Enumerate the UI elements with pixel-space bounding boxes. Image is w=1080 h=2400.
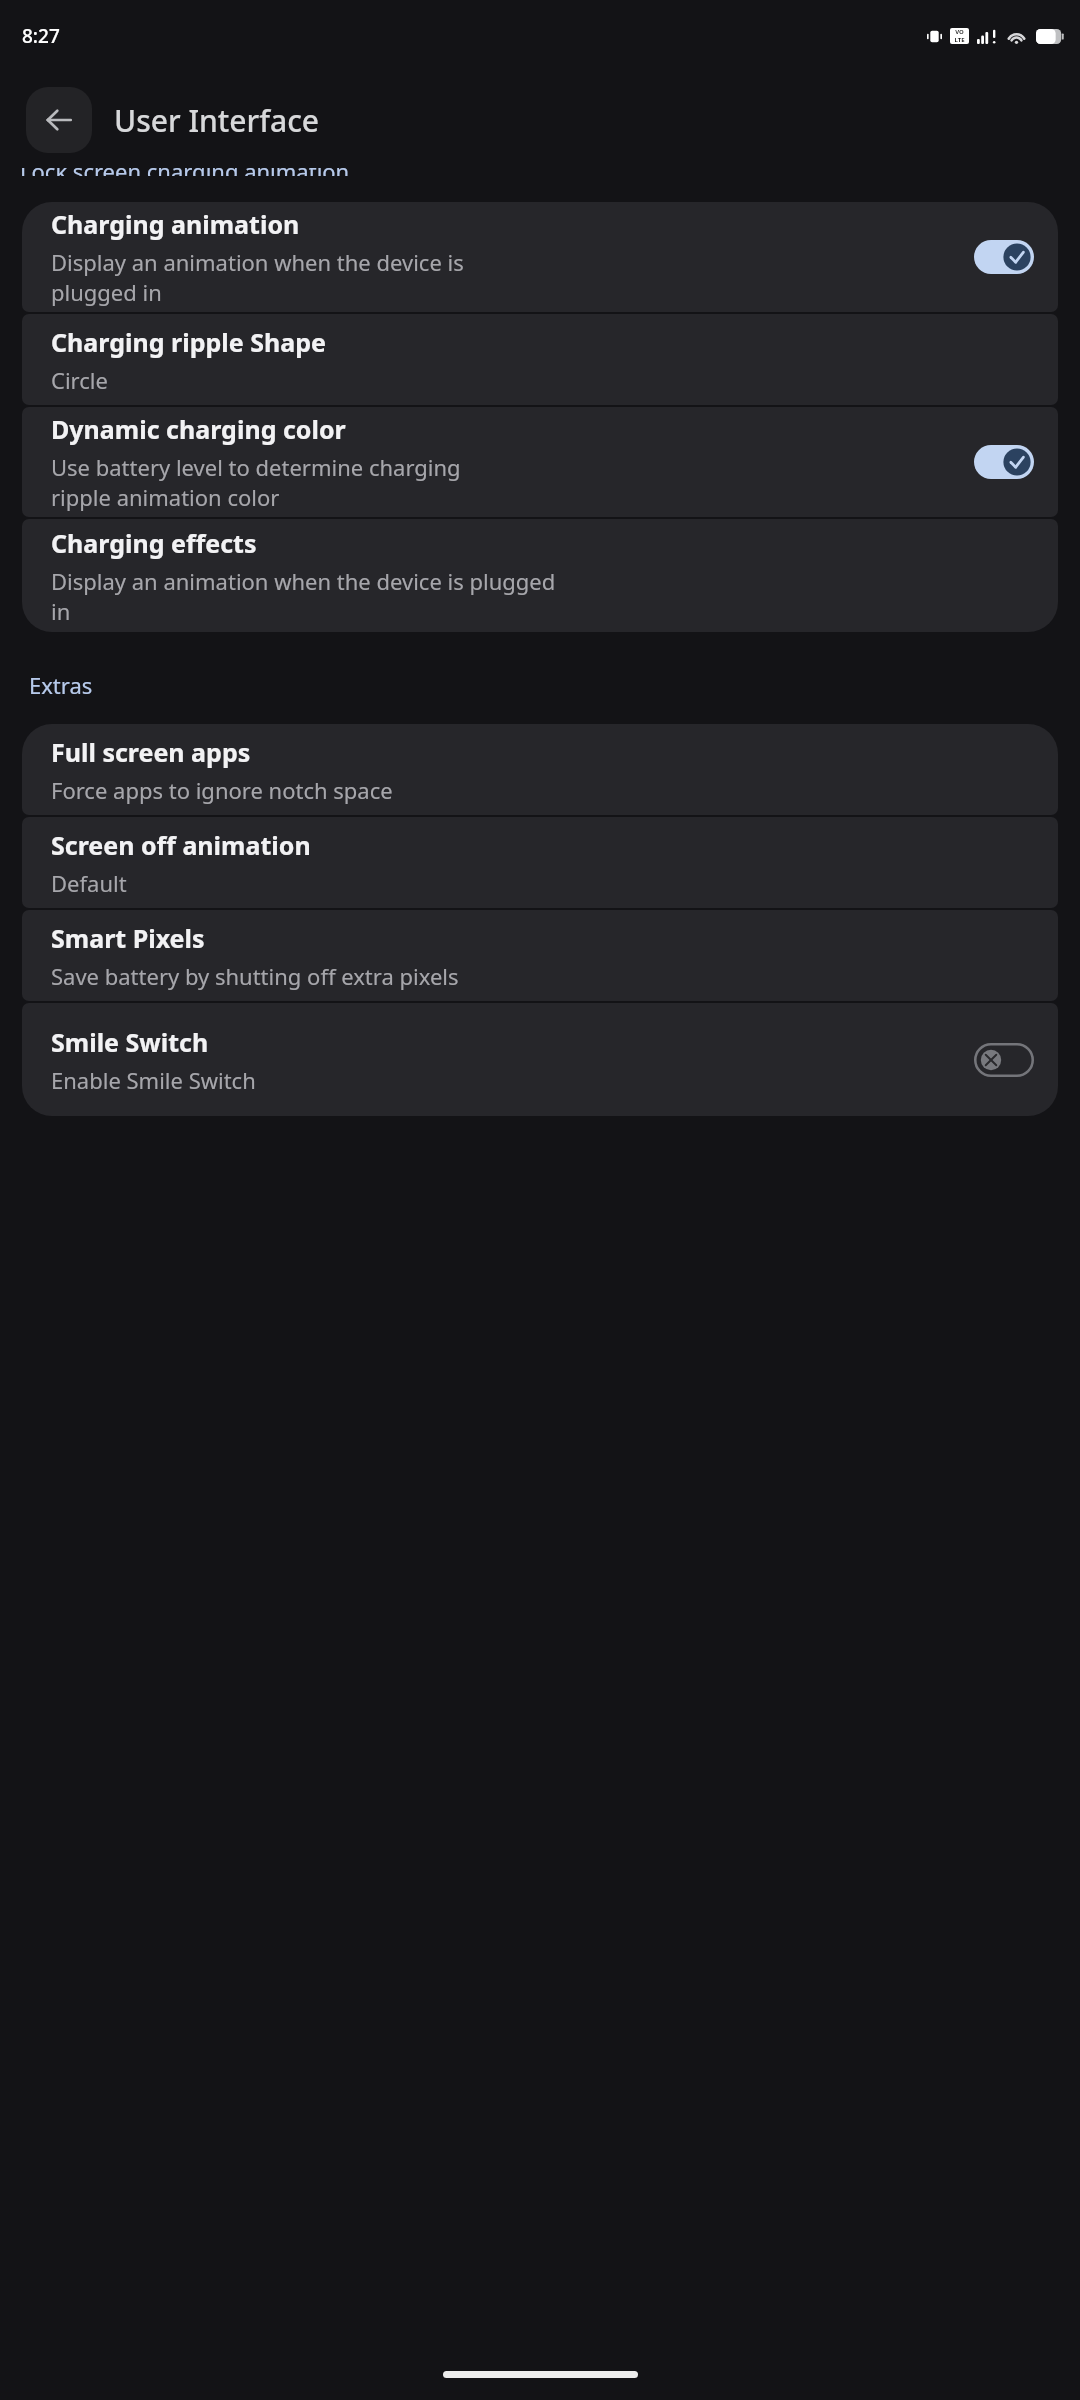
button[interactable]: Back — [26, 87, 92, 153]
button[interactable]: Toggle on — [974, 240, 1034, 274]
button[interactable]: Full screen apps — [22, 724, 1058, 815]
button[interactable]: Toggle on — [974, 445, 1034, 479]
button[interactable]: Smart Pixels — [22, 910, 1058, 1001]
staticText: Enable Smile Switch — [51, 1065, 256, 1095]
staticText: Smile Switch — [51, 1025, 209, 1059]
staticText: Lock screen charging animation — [20, 168, 350, 176]
staticText: Use battery level to determine charging … — [51, 452, 461, 512]
staticText: Screen off animation — [51, 828, 311, 862]
button[interactable]: Charging ripple Shape — [22, 314, 1058, 405]
staticText: VO — [955, 28, 964, 36]
button[interactable]: Toggle off — [974, 1043, 1034, 1077]
staticText: Charging effects — [51, 526, 257, 560]
staticText: Circle — [51, 365, 108, 395]
staticText: Force apps to ignore notch space — [51, 775, 393, 805]
staticText: LTE — [954, 36, 965, 44]
staticText: 8:27 — [22, 23, 60, 49]
staticText: Display an animation when the device is … — [51, 566, 556, 626]
staticText: Save battery by shutting off extra pixel… — [51, 961, 459, 991]
staticText: Charging ripple Shape — [51, 325, 326, 359]
button[interactable]: Screen off animation — [22, 817, 1058, 908]
button[interactable]: Smile Switch — [22, 1003, 1058, 1116]
staticText: Display an animation when the device is … — [51, 247, 464, 307]
staticText: User Interface — [114, 100, 320, 141]
staticText: Charging animation — [51, 207, 300, 241]
staticText: Smart Pixels — [51, 921, 205, 955]
button[interactable]: Charging animation — [22, 202, 1058, 312]
staticText: Default — [51, 868, 127, 898]
staticText: Dynamic charging color — [51, 412, 346, 446]
staticText: Extras — [29, 670, 93, 700]
staticText: Full screen apps — [51, 735, 251, 769]
button[interactable]: Dynamic charging color — [22, 407, 1058, 517]
button[interactable]: Charging effects — [22, 519, 1058, 632]
